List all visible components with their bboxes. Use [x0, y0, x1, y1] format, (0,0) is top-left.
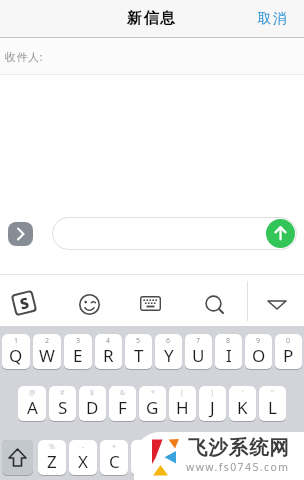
staticText: B	[170, 450, 182, 473]
staticText: S	[58, 396, 68, 419]
staticText: "	[271, 388, 274, 398]
staticText: T	[134, 344, 144, 367]
staticText: 8	[226, 336, 231, 346]
staticText: www.fs0745.com	[186, 460, 290, 474]
button[interactable]	[52, 217, 297, 250]
button[interactable]: (	[169, 386, 196, 421]
button[interactable]: 8	[215, 334, 242, 369]
button[interactable]: 9	[245, 334, 272, 369]
button[interactable]: +	[100, 440, 128, 475]
staticText: 新信息	[127, 9, 177, 28]
button[interactable]: 收件人:	[0, 38, 304, 75]
button[interactable]: 4	[95, 334, 122, 369]
staticText: G	[146, 396, 159, 419]
staticText: F	[118, 396, 127, 419]
button[interactable]: *	[139, 386, 166, 421]
staticText: 7	[196, 336, 201, 346]
staticText: @	[29, 388, 36, 398]
button[interactable]: #	[49, 386, 76, 421]
button[interactable]: 6	[155, 334, 182, 369]
staticText: S	[18, 292, 31, 314]
staticText: L	[268, 396, 277, 419]
button[interactable]: @	[18, 386, 46, 421]
button[interactable]: '	[229, 386, 256, 421]
button[interactable]: =	[131, 440, 159, 475]
button[interactable]: -	[69, 440, 97, 475]
staticText: Z	[47, 450, 57, 473]
button[interactable]: $	[79, 386, 106, 421]
staticText: 3	[76, 336, 81, 346]
staticText: %	[49, 442, 55, 452]
staticText: (	[181, 388, 184, 398]
staticText: P	[283, 344, 294, 367]
staticText: &	[120, 388, 126, 398]
staticText: ;	[206, 442, 208, 452]
staticText: 1	[14, 336, 19, 346]
button[interactable]: 5	[125, 334, 152, 369]
staticText: 6	[166, 336, 171, 346]
staticText: W	[39, 344, 55, 367]
button[interactable]: S	[11, 290, 37, 316]
button[interactable]	[8, 222, 33, 246]
button[interactable]	[78, 293, 101, 316]
staticText: )	[211, 388, 214, 398]
staticText: *	[151, 388, 155, 398]
staticText: A	[27, 396, 38, 419]
button[interactable]: "	[259, 386, 286, 421]
button[interactable]	[204, 294, 226, 316]
staticText: /	[175, 442, 178, 452]
staticText: E	[73, 344, 83, 367]
button[interactable]: 3	[64, 334, 92, 369]
button[interactable]	[2, 440, 33, 475]
staticText: -	[82, 442, 85, 452]
button[interactable]: 1	[2, 334, 30, 369]
staticText: U	[192, 344, 205, 367]
staticText: H	[176, 396, 189, 419]
button[interactable]: :	[224, 440, 252, 475]
button[interactable]: /	[162, 440, 190, 475]
staticText: Y	[164, 344, 174, 367]
staticText: M	[230, 450, 246, 473]
staticText: K	[237, 396, 248, 419]
staticText: X	[78, 450, 88, 473]
button[interactable]: )	[199, 386, 226, 421]
staticText: 5	[136, 336, 141, 346]
button[interactable]: 2	[33, 334, 61, 369]
button[interactable]: 取消	[258, 11, 288, 28]
staticText: 4	[106, 336, 111, 346]
button[interactable]	[267, 300, 287, 310]
staticText: 2	[45, 336, 50, 346]
staticText: :	[237, 442, 239, 452]
button[interactable]: 7	[185, 334, 212, 369]
button[interactable]: &	[109, 386, 136, 421]
button[interactable]	[140, 296, 161, 311]
staticText: $	[90, 388, 95, 398]
staticText: #	[60, 388, 65, 398]
staticText: 0	[286, 336, 291, 346]
staticText: C	[109, 450, 120, 473]
button[interactable]	[266, 219, 295, 248]
staticText: I	[226, 344, 232, 367]
staticText: '	[242, 388, 244, 398]
staticText: 9	[256, 336, 261, 346]
staticText: J	[210, 396, 215, 419]
button[interactable]: 0	[275, 334, 302, 369]
staticText: 飞沙系统网	[188, 435, 290, 460]
staticText: D	[86, 396, 99, 419]
staticText: +	[112, 442, 117, 452]
staticText: O	[252, 344, 266, 367]
staticText: N	[201, 450, 214, 473]
button[interactable]	[255, 440, 302, 475]
staticText: R	[103, 344, 114, 367]
staticText: 取消	[258, 10, 288, 27]
button[interactable]: %	[38, 440, 66, 475]
staticText: Q	[9, 344, 23, 367]
staticText: 收件人:	[5, 49, 43, 64]
button[interactable]: ;	[193, 440, 221, 475]
